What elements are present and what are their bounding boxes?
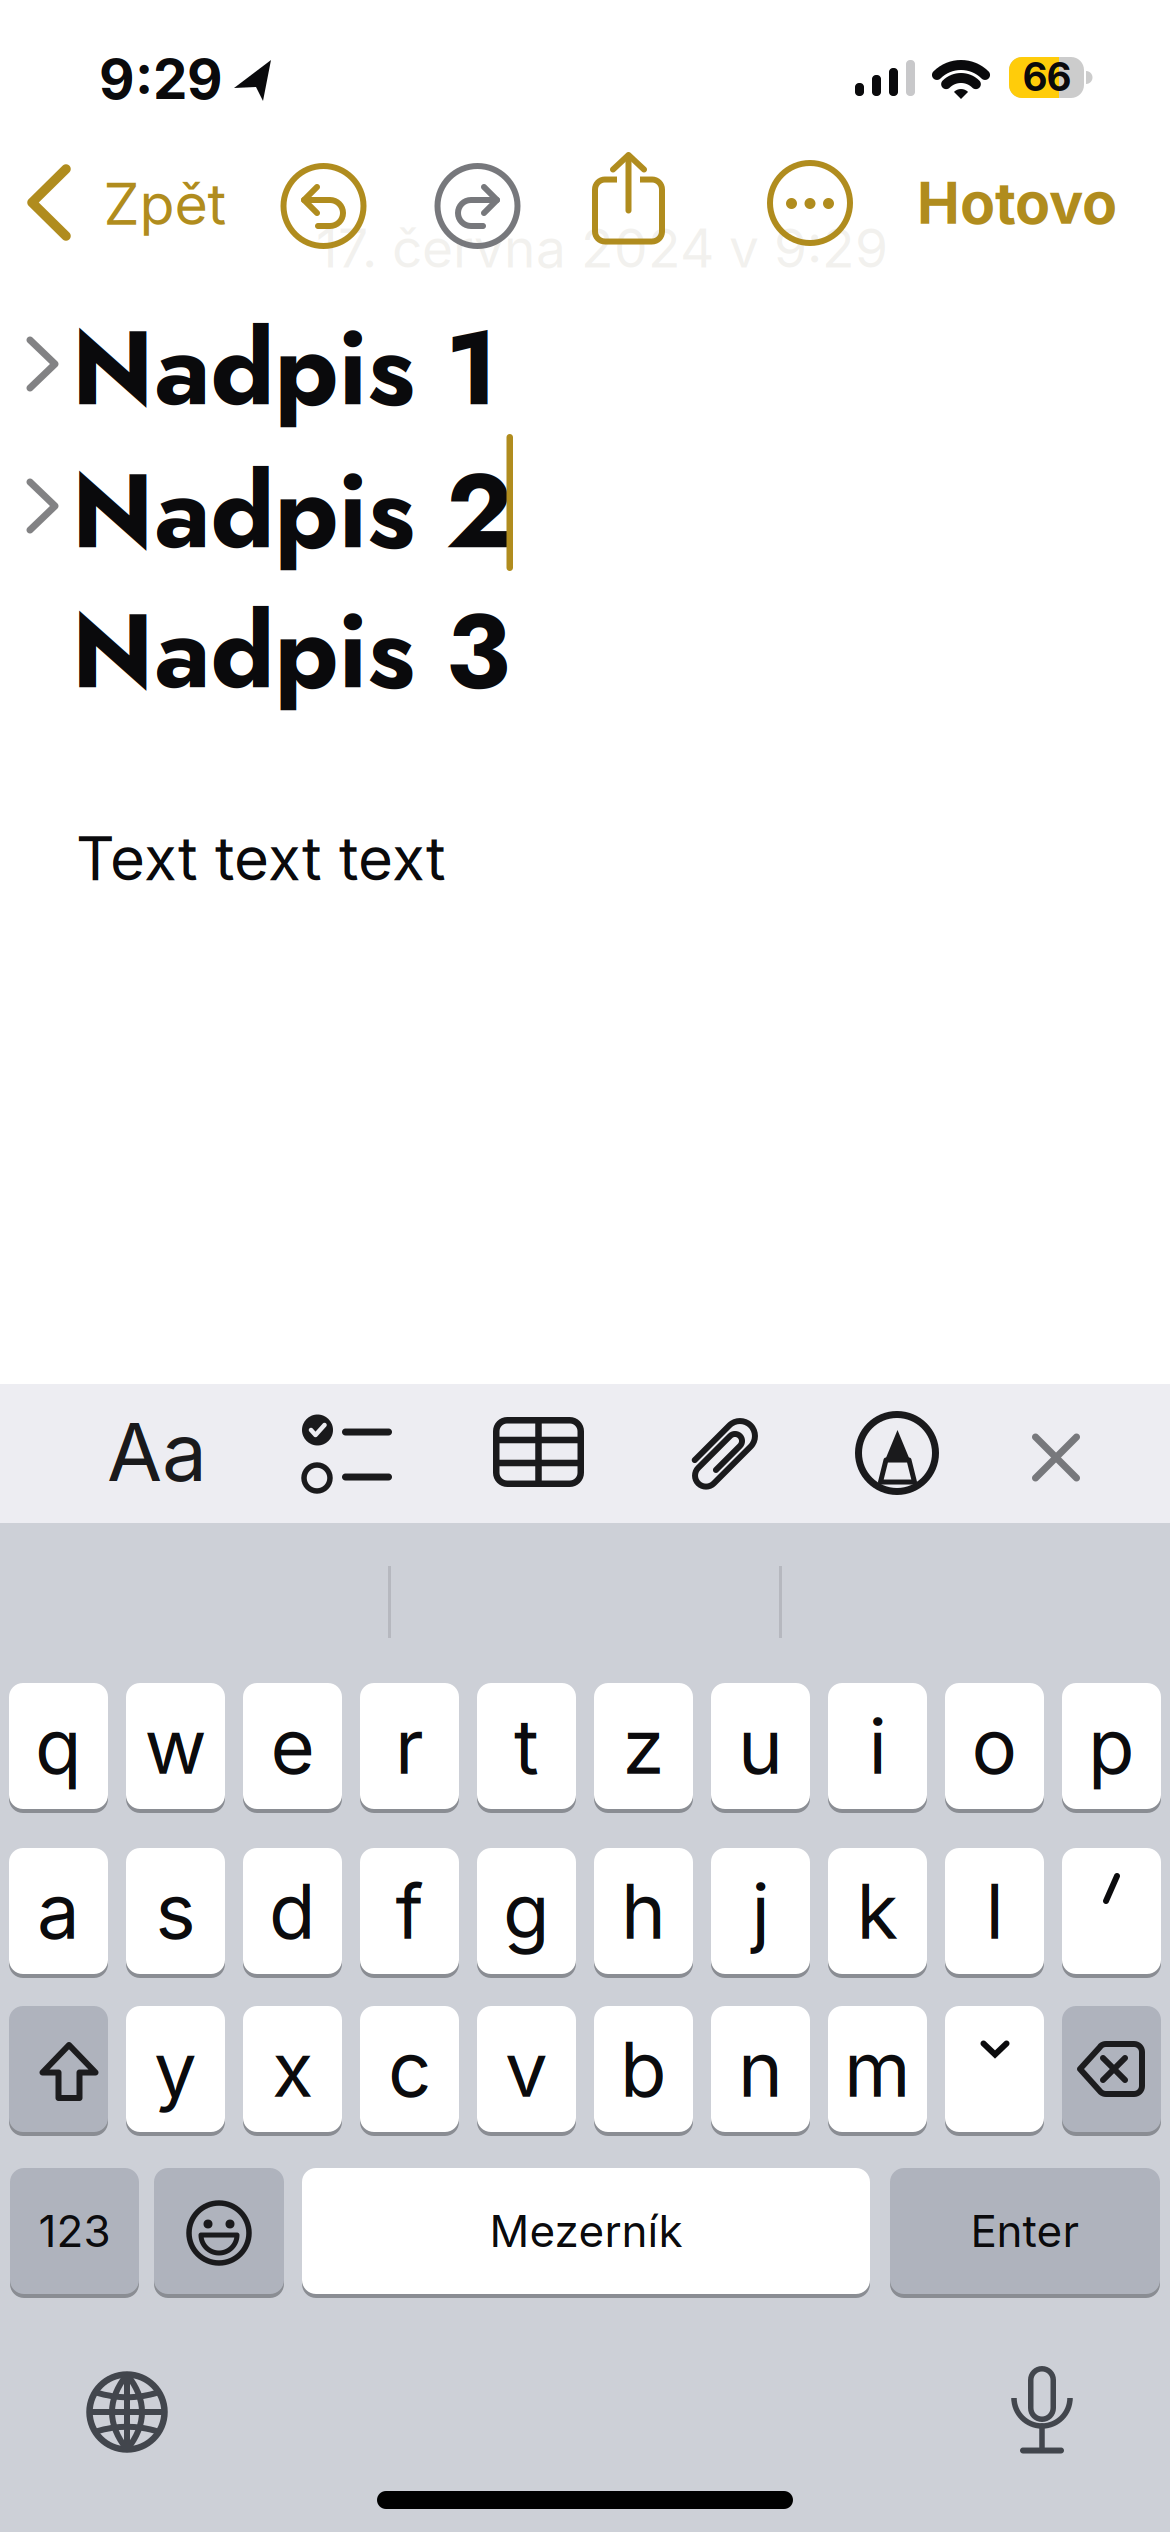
staticText: Nadpis 1 (71, 293, 498, 443)
staticText: z (622, 1701, 664, 1791)
button[interactable]: b (594, 2006, 693, 2132)
button[interactable]: t (477, 1683, 576, 1809)
staticText: Enter (970, 2205, 1079, 2257)
button[interactable]: Caron accent (945, 2006, 1044, 2132)
staticText: Zpět (103, 170, 226, 238)
staticText: g (503, 1866, 550, 1956)
staticText: t (514, 1701, 539, 1791)
staticText: Hotovo (917, 169, 1117, 237)
button[interactable]: Format (0, 0, 1170, 2532)
staticText: y (154, 2024, 197, 2114)
button[interactable]: y (126, 2006, 225, 2132)
button[interactable]: Markup (857, 1413, 937, 1493)
button[interactable]: Insert table (493, 1417, 584, 1487)
button[interactable]: k (828, 1848, 927, 1974)
staticText: 66 (1023, 54, 1071, 100)
button[interactable]: o (945, 1683, 1044, 1809)
button[interactable]: x (243, 2006, 342, 2132)
button[interactable]: Delete (1062, 2006, 1161, 2132)
staticText: e (270, 1701, 314, 1791)
staticText: x (272, 2024, 313, 2114)
button[interactable]: m (828, 2006, 927, 2132)
button[interactable]: Dismiss keyboard (1031, 1433, 1080, 1482)
staticText: 17. června 2024 v 9:29 (316, 216, 888, 279)
staticText: o (971, 1701, 1017, 1791)
button[interactable]: v (477, 2006, 576, 2132)
staticText: c (388, 2024, 431, 2114)
staticText: 123 (38, 2205, 110, 2257)
button[interactable]: r (360, 1683, 459, 1809)
button[interactable]: p (1062, 1683, 1161, 1809)
staticText: h (621, 1866, 666, 1956)
staticText: a (37, 1866, 80, 1956)
button[interactable]: 123 (10, 2168, 139, 2294)
button[interactable]: q (9, 1683, 108, 1809)
button[interactable]: Undo (283, 166, 364, 246)
staticText: q (35, 1701, 82, 1791)
staticText: m (844, 2024, 911, 2114)
staticText: Aa (107, 1405, 207, 1499)
button[interactable]: Zpět (0, 0, 1170, 2532)
button[interactable]: Next keyboard (86, 2371, 168, 2453)
button[interactable]: Shift (9, 2006, 108, 2132)
button[interactable]: g (477, 1848, 576, 1974)
button[interactable]: Attach (697, 1402, 749, 1504)
staticText: Text text text (76, 823, 446, 894)
button[interactable]: c (360, 2006, 459, 2132)
button[interactable]: n (711, 2006, 810, 2132)
staticText: i (868, 1701, 886, 1791)
button[interactable]: d (243, 1848, 342, 1974)
staticText: v (505, 2024, 548, 2114)
button[interactable]: h (594, 1848, 693, 1974)
button[interactable]: a (9, 1848, 108, 1974)
button[interactable]: s (126, 1848, 225, 1974)
staticText: d (269, 1866, 316, 1956)
button[interactable]: Enter (890, 2168, 1160, 2294)
staticText: n (738, 2024, 783, 2114)
staticText: w (144, 1701, 206, 1791)
button[interactable]: z (594, 1683, 693, 1809)
button[interactable]: Share (592, 153, 665, 248)
button[interactable]: l (945, 1848, 1044, 1974)
button[interactable]: Checklist (301, 1415, 392, 1495)
staticText: f (395, 1866, 423, 1956)
staticText: j (751, 1866, 769, 1956)
button[interactable]: u (711, 1683, 810, 1809)
button[interactable]: Mezerník (302, 2168, 870, 2294)
staticText: b (620, 2024, 667, 2114)
button[interactable]: Dictate (1010, 2364, 1074, 2464)
button[interactable]: j (711, 1848, 810, 1974)
button[interactable]: Hotovo (0, 0, 1170, 2532)
staticText: l (985, 1866, 1003, 1956)
staticText: r (395, 1701, 424, 1791)
button[interactable]: w (126, 1683, 225, 1809)
button[interactable]: i (828, 1683, 927, 1809)
button[interactable]: Acute accent (1062, 1848, 1161, 1974)
staticText: u (738, 1701, 783, 1791)
staticText: k (856, 1866, 898, 1956)
button[interactable]: More (769, 162, 850, 243)
staticText: Nadpis 3 (71, 576, 510, 726)
staticText: p (1088, 1701, 1135, 1791)
staticText: s (155, 1866, 195, 1956)
button[interactable]: Emoji (154, 2168, 284, 2294)
staticText: Mezerník (489, 2205, 682, 2257)
staticText: 9:29 (99, 47, 223, 111)
button[interactable]: e (243, 1683, 342, 1809)
button[interactable]: f (360, 1848, 459, 1974)
staticText: Nadpis 2 (71, 436, 513, 586)
button[interactable]: Redo (437, 166, 518, 246)
